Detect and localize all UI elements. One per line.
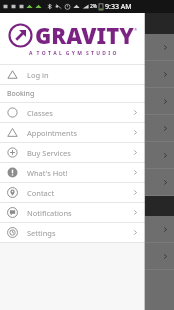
staticText: Classes: [27, 108, 53, 118]
staticText: Settings: [27, 228, 56, 238]
button[interactable]: Classes: [0, 103, 145, 122]
staticText: Contact: [27, 188, 55, 198]
staticText: Booking: [7, 89, 35, 99]
staticText: 9:33 AM: [105, 2, 132, 12]
staticText: 2%: [90, 3, 98, 10]
staticText: What's Hot!: [27, 168, 68, 178]
staticText: GRAVITY: [35, 20, 134, 50]
button[interactable]: Notifications: [0, 203, 145, 222]
staticText: Notifications: [27, 208, 72, 218]
staticText: Buy Services: [27, 148, 71, 158]
button[interactable]: Log in: [0, 65, 145, 84]
button[interactable]: Buy Services: [0, 143, 145, 162]
staticText: Appointments: [27, 128, 78, 138]
staticText: A T O T A L G Y M S T U D I O: [29, 50, 117, 57]
button[interactable]: What's Hot: [0, 163, 145, 182]
button[interactable]: Contact: [0, 183, 145, 202]
staticText: Log in: [27, 70, 49, 80]
staticText: ®: [134, 27, 138, 32]
button[interactable]: Settings: [0, 223, 145, 242]
button[interactable]: Appointments: [0, 123, 145, 142]
